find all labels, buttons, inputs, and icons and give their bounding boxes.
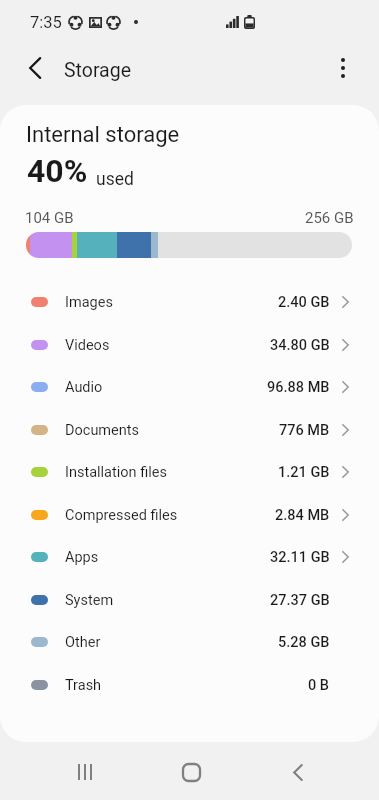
staticText: 776 MB [279, 422, 330, 439]
staticText: 34.80 GB [270, 337, 330, 354]
button[interactable]: System [0, 579, 379, 621]
button[interactable]: Installation files [0, 451, 379, 493]
button[interactable]: Home [169, 750, 214, 792]
staticText: 32.11 GB [270, 549, 330, 566]
staticText: Audio [65, 379, 103, 396]
button[interactable]: Videos [0, 324, 379, 366]
button[interactable]: Back [275, 750, 320, 792]
button[interactable]: Apps [0, 536, 379, 578]
staticText: Storage [64, 59, 132, 82]
button[interactable]: Recent apps [63, 750, 108, 792]
staticText: 0 B [308, 677, 330, 694]
staticText: 5.28 GB [278, 634, 330, 651]
staticText: Internal storage [26, 122, 180, 148]
staticText: 104 GB [25, 209, 74, 227]
button[interactable]: Other [0, 621, 379, 663]
staticText: 96.88 MB [267, 379, 330, 396]
staticText: used [96, 169, 134, 190]
staticText: Images [65, 294, 113, 311]
button[interactable]: Navigate up [12, 49, 57, 87]
staticText: System [65, 592, 114, 609]
button[interactable]: Images [0, 281, 379, 323]
staticText: Videos [65, 337, 110, 354]
staticText: Compressed files [65, 507, 178, 524]
staticText: 256 GB [305, 209, 354, 227]
staticText: 2.84 MB [275, 507, 330, 524]
staticText: Apps [65, 549, 99, 566]
staticText: 2.40 GB [278, 294, 330, 311]
staticText: 40% [27, 152, 88, 190]
staticText: Documents [65, 422, 140, 439]
button[interactable]: More options [320, 49, 365, 87]
button[interactable]: Compressed files [0, 494, 379, 536]
button[interactable]: Trash [0, 664, 379, 706]
staticText: Other [65, 634, 101, 651]
staticText: Installation files [65, 464, 167, 481]
staticText: 27.37 GB [270, 592, 330, 609]
button[interactable]: Audio [0, 366, 379, 408]
button[interactable]: Documents [0, 409, 379, 451]
staticText: 7:35 [30, 13, 62, 32]
staticText: 1.21 GB [278, 464, 330, 481]
staticText: Trash [65, 677, 102, 694]
